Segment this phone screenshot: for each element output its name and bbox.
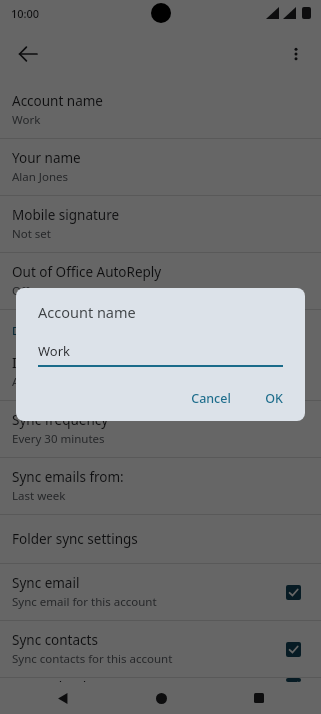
- staticText: Mobile signature: [12, 206, 120, 224]
- staticText: Alan Jones: [12, 169, 69, 185]
- button[interactable]: Back: [48, 684, 76, 712]
- staticText: OK: [265, 390, 283, 407]
- staticText: 10:00: [11, 6, 40, 21]
- button[interactable]: Sync calendar: [0, 678, 321, 682]
- button[interactable]: Your name: [0, 139, 321, 195]
- staticText: Sync emails from:: [12, 468, 124, 486]
- staticText: Every 30 minutes: [12, 431, 105, 447]
- staticText: Work: [12, 112, 41, 128]
- staticText: Sync email for this account: [12, 594, 157, 610]
- button[interactable]: Recents: [245, 684, 273, 712]
- button[interactable]: Cancel: [181, 384, 241, 413]
- staticText: Data usage: [12, 323, 75, 339]
- button[interactable]: Inbox check frequency: [0, 344, 321, 400]
- staticText: Inbox check frequency: [12, 354, 155, 372]
- button[interactable]: Sync contacts: [0, 621, 321, 677]
- button[interactable]: More options: [276, 34, 316, 74]
- button[interactable]: Mobile signature: [0, 196, 321, 252]
- button[interactable]: Sync email: [0, 564, 321, 620]
- staticText: Automatic: [12, 374, 68, 390]
- button[interactable]: Account name: [0, 82, 321, 138]
- button[interactable]: Sync contacts: [277, 633, 309, 665]
- staticText: Sync frequency: [12, 411, 109, 429]
- button[interactable]: Folder sync settings: [0, 515, 321, 563]
- staticText: Sync email: [12, 574, 80, 592]
- staticText: Sync calendar: [12, 678, 100, 682]
- staticText: Cancel: [191, 390, 231, 407]
- button[interactable]: Back: [6, 32, 50, 76]
- button[interactable]: Sync calendar: [277, 678, 309, 682]
- staticText: Not set: [12, 226, 51, 242]
- staticText: Folder sync settings: [12, 530, 138, 548]
- staticText: Your name: [12, 149, 81, 167]
- button[interactable]: OK: [255, 384, 293, 413]
- staticText: Account name: [38, 302, 136, 322]
- staticText: Out of Office AutoReply: [12, 263, 162, 281]
- button[interactable]: Work: [38, 342, 283, 367]
- button[interactable]: Home: [147, 684, 175, 712]
- staticText: Last week: [12, 488, 66, 504]
- staticText: Sync contacts: [12, 631, 98, 649]
- button[interactable]: Out of Office AutoReply: [0, 253, 321, 309]
- staticText: Account name: [12, 92, 103, 110]
- button[interactable]: Sync email: [277, 576, 309, 608]
- staticText: Work: [38, 342, 71, 360]
- staticText: Off: [12, 283, 29, 299]
- button[interactable]: Sync emails from:: [0, 458, 321, 514]
- button[interactable]: Sync frequency: [0, 401, 321, 457]
- staticText: Sync contacts for this account: [12, 651, 173, 667]
